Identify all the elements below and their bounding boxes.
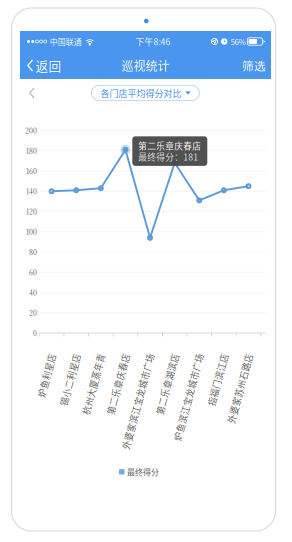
staticText: 180 (26, 146, 37, 156)
staticText: 筛选 (242, 57, 266, 74)
staticText: 100 (26, 227, 37, 237)
staticText: 中国联通 (50, 36, 82, 47)
staticText: 最终得分 (127, 466, 159, 478)
staticText: 0 (33, 328, 37, 338)
staticText: 指福门滨江店 (171, 347, 225, 360)
button[interactable]: 筛选 (233, 52, 271, 79)
button[interactable]: 各门店平均得分对比 (91, 85, 199, 100)
staticText: 炉鱼滨江宝龙城市广场 (110, 347, 200, 360)
staticText: 第二乐章湖滨店 (113, 347, 176, 360)
staticText: 各门店平均得分对比 (100, 86, 181, 99)
staticText: 返回 (35, 56, 61, 75)
staticText: 200 (25, 125, 37, 135)
staticText: 最终得分：181 (138, 150, 198, 163)
staticText: 第二乐章庆春店 (63, 347, 126, 360)
staticText: 120 (26, 206, 37, 216)
staticText: 巡视统计 (121, 57, 169, 74)
staticText: 160 (26, 166, 37, 176)
staticText: 炉鱼利星店 (8, 347, 53, 360)
staticText: 锡小二利星店 (23, 347, 77, 360)
staticText: 外婆家苏州石路店 (177, 347, 249, 360)
staticText: 第二乐章庆春店 (138, 139, 201, 152)
button[interactable]: 返回 (20, 79, 43, 107)
staticText: 56% (230, 36, 245, 47)
staticText: 60 (29, 267, 37, 277)
staticText: 下午8:46 (135, 35, 170, 48)
staticText: 20 (29, 308, 37, 318)
staticText: 杭州大厦蒸年青 (39, 347, 102, 360)
staticText: 40 (29, 287, 37, 297)
staticText: 140 (26, 186, 37, 196)
staticText: 80 (29, 247, 37, 257)
staticText: 外婆家滨江宝龙城市广场 (52, 347, 151, 360)
button[interactable]: 返回 (20, 52, 68, 79)
